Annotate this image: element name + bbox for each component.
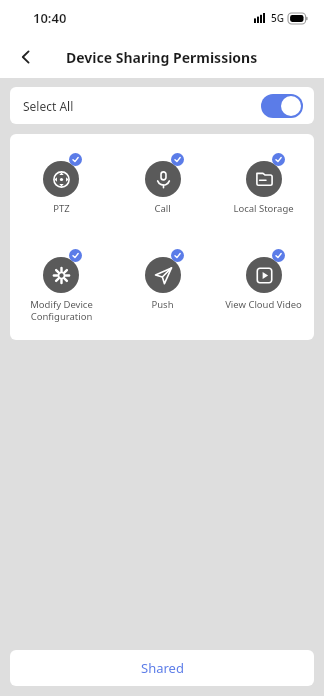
button[interactable]: Shared	[10, 650, 314, 686]
button[interactable]: Local Storage	[213, 153, 314, 215]
button[interactable]: View Cloud Video	[213, 249, 314, 311]
staticText: Device Sharing Permissions	[66, 48, 258, 67]
button[interactable]: Push	[112, 249, 213, 311]
staticText: Shared	[141, 659, 184, 677]
staticText: 5G	[271, 11, 284, 25]
staticText: Call	[154, 202, 171, 215]
staticText: Modify Device Configuration	[30, 298, 93, 323]
staticText: View Cloud Video	[225, 298, 302, 311]
button[interactable]: Call	[112, 153, 213, 215]
staticText: PTZ	[53, 202, 70, 215]
button[interactable]: Modify Device Configuration	[10, 249, 112, 323]
staticText: Select All	[23, 98, 74, 114]
staticText: Local Storage	[233, 202, 294, 215]
staticText: 10:40	[33, 9, 67, 27]
button[interactable]: Select All	[10, 87, 314, 124]
button[interactable]: PTZ	[10, 153, 112, 215]
staticText: Push	[151, 298, 174, 311]
button[interactable]: Back	[8, 39, 44, 75]
